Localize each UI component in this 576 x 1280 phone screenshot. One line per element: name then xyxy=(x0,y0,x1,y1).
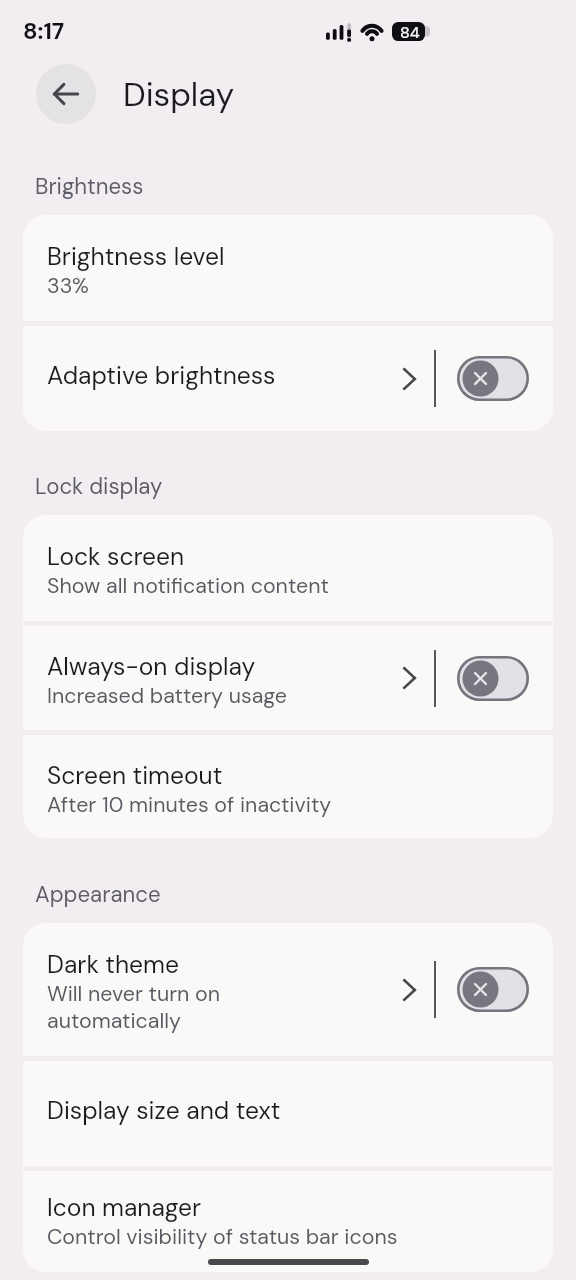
staticText: 33% xyxy=(47,272,89,299)
button[interactable]: Screen timeout xyxy=(23,735,553,838)
staticText: Control visibility of status bar icons xyxy=(47,1223,398,1250)
button[interactable]: Toggle off xyxy=(457,656,529,701)
button[interactable]: Display size and text xyxy=(23,1061,553,1166)
button[interactable]: More options xyxy=(390,626,422,730)
staticText: Lock screen xyxy=(47,541,185,572)
staticText: Lock display xyxy=(35,472,163,501)
button[interactable]: Brightness level xyxy=(23,215,553,321)
staticText: Dark theme xyxy=(47,949,179,980)
button[interactable]: More options xyxy=(390,326,422,431)
staticText: Adaptive brightness xyxy=(47,360,276,391)
button[interactable]: Toggle off xyxy=(457,967,529,1012)
staticText: Screen timeout xyxy=(47,760,223,791)
staticText: Display size and text xyxy=(47,1095,281,1126)
staticText: Brightness level xyxy=(47,241,225,272)
button[interactable]: Always-on display xyxy=(23,626,553,730)
button[interactable]: Icon manager xyxy=(23,1171,553,1272)
staticText: Appearance xyxy=(35,880,161,909)
button[interactable]: Adaptive brightness xyxy=(23,326,553,431)
staticText: Always-on display xyxy=(47,651,256,682)
staticText: Icon manager xyxy=(47,1192,202,1223)
button[interactable]: More options xyxy=(390,923,422,1056)
button[interactable]: Back xyxy=(36,64,96,124)
staticText: 84 xyxy=(400,22,420,41)
staticText: Will never turn on automatically xyxy=(47,980,221,1034)
staticText: After 10 minutes of inactivity xyxy=(47,791,332,818)
staticText: Show all notification content xyxy=(47,572,329,599)
button[interactable]: Lock screen xyxy=(23,515,553,621)
staticText: Display xyxy=(123,73,235,116)
staticText: Increased battery usage xyxy=(47,682,287,709)
button[interactable]: Dark theme xyxy=(23,923,553,1056)
button[interactable]: Toggle off xyxy=(457,356,529,401)
staticText: 8:17 xyxy=(23,16,65,46)
staticText: Brightness xyxy=(35,172,144,201)
